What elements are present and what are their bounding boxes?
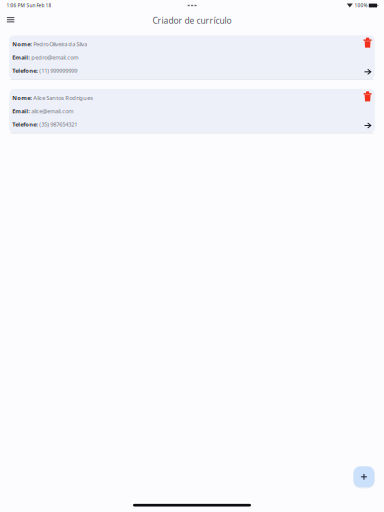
button[interactable]: Excluir currículo	[362, 36, 374, 50]
staticText: Nome:	[12, 94, 32, 102]
staticText: 100%	[354, 2, 367, 9]
staticText: Nome:	[12, 40, 32, 48]
staticText: Alice Santos Rodrigues	[33, 94, 93, 102]
staticText: Criador de currículo	[152, 15, 231, 26]
staticText: Email:	[12, 107, 30, 115]
button[interactable]: Abrir currículo	[362, 121, 374, 130]
staticText: Pedro Oliveira da Silva	[33, 40, 87, 48]
button[interactable]: Abrir currículo	[362, 67, 374, 77]
button[interactable]: Excluir currículo	[362, 89, 374, 103]
staticText: 1:06 PM Sun Feb 18	[6, 2, 51, 9]
staticText: (35) 987654321	[39, 120, 77, 128]
staticText: Telefone:	[12, 67, 38, 74]
staticText: Email:	[12, 53, 30, 61]
staticText: Telefone:	[12, 120, 38, 128]
staticText: (11) 999999999	[39, 67, 77, 74]
button[interactable]: Adicionar currículo	[353, 465, 374, 489]
button[interactable]: Menu	[4, 15, 17, 26]
staticText: alice@email.com	[31, 107, 73, 115]
staticText: pedro@email.com	[31, 53, 78, 61]
